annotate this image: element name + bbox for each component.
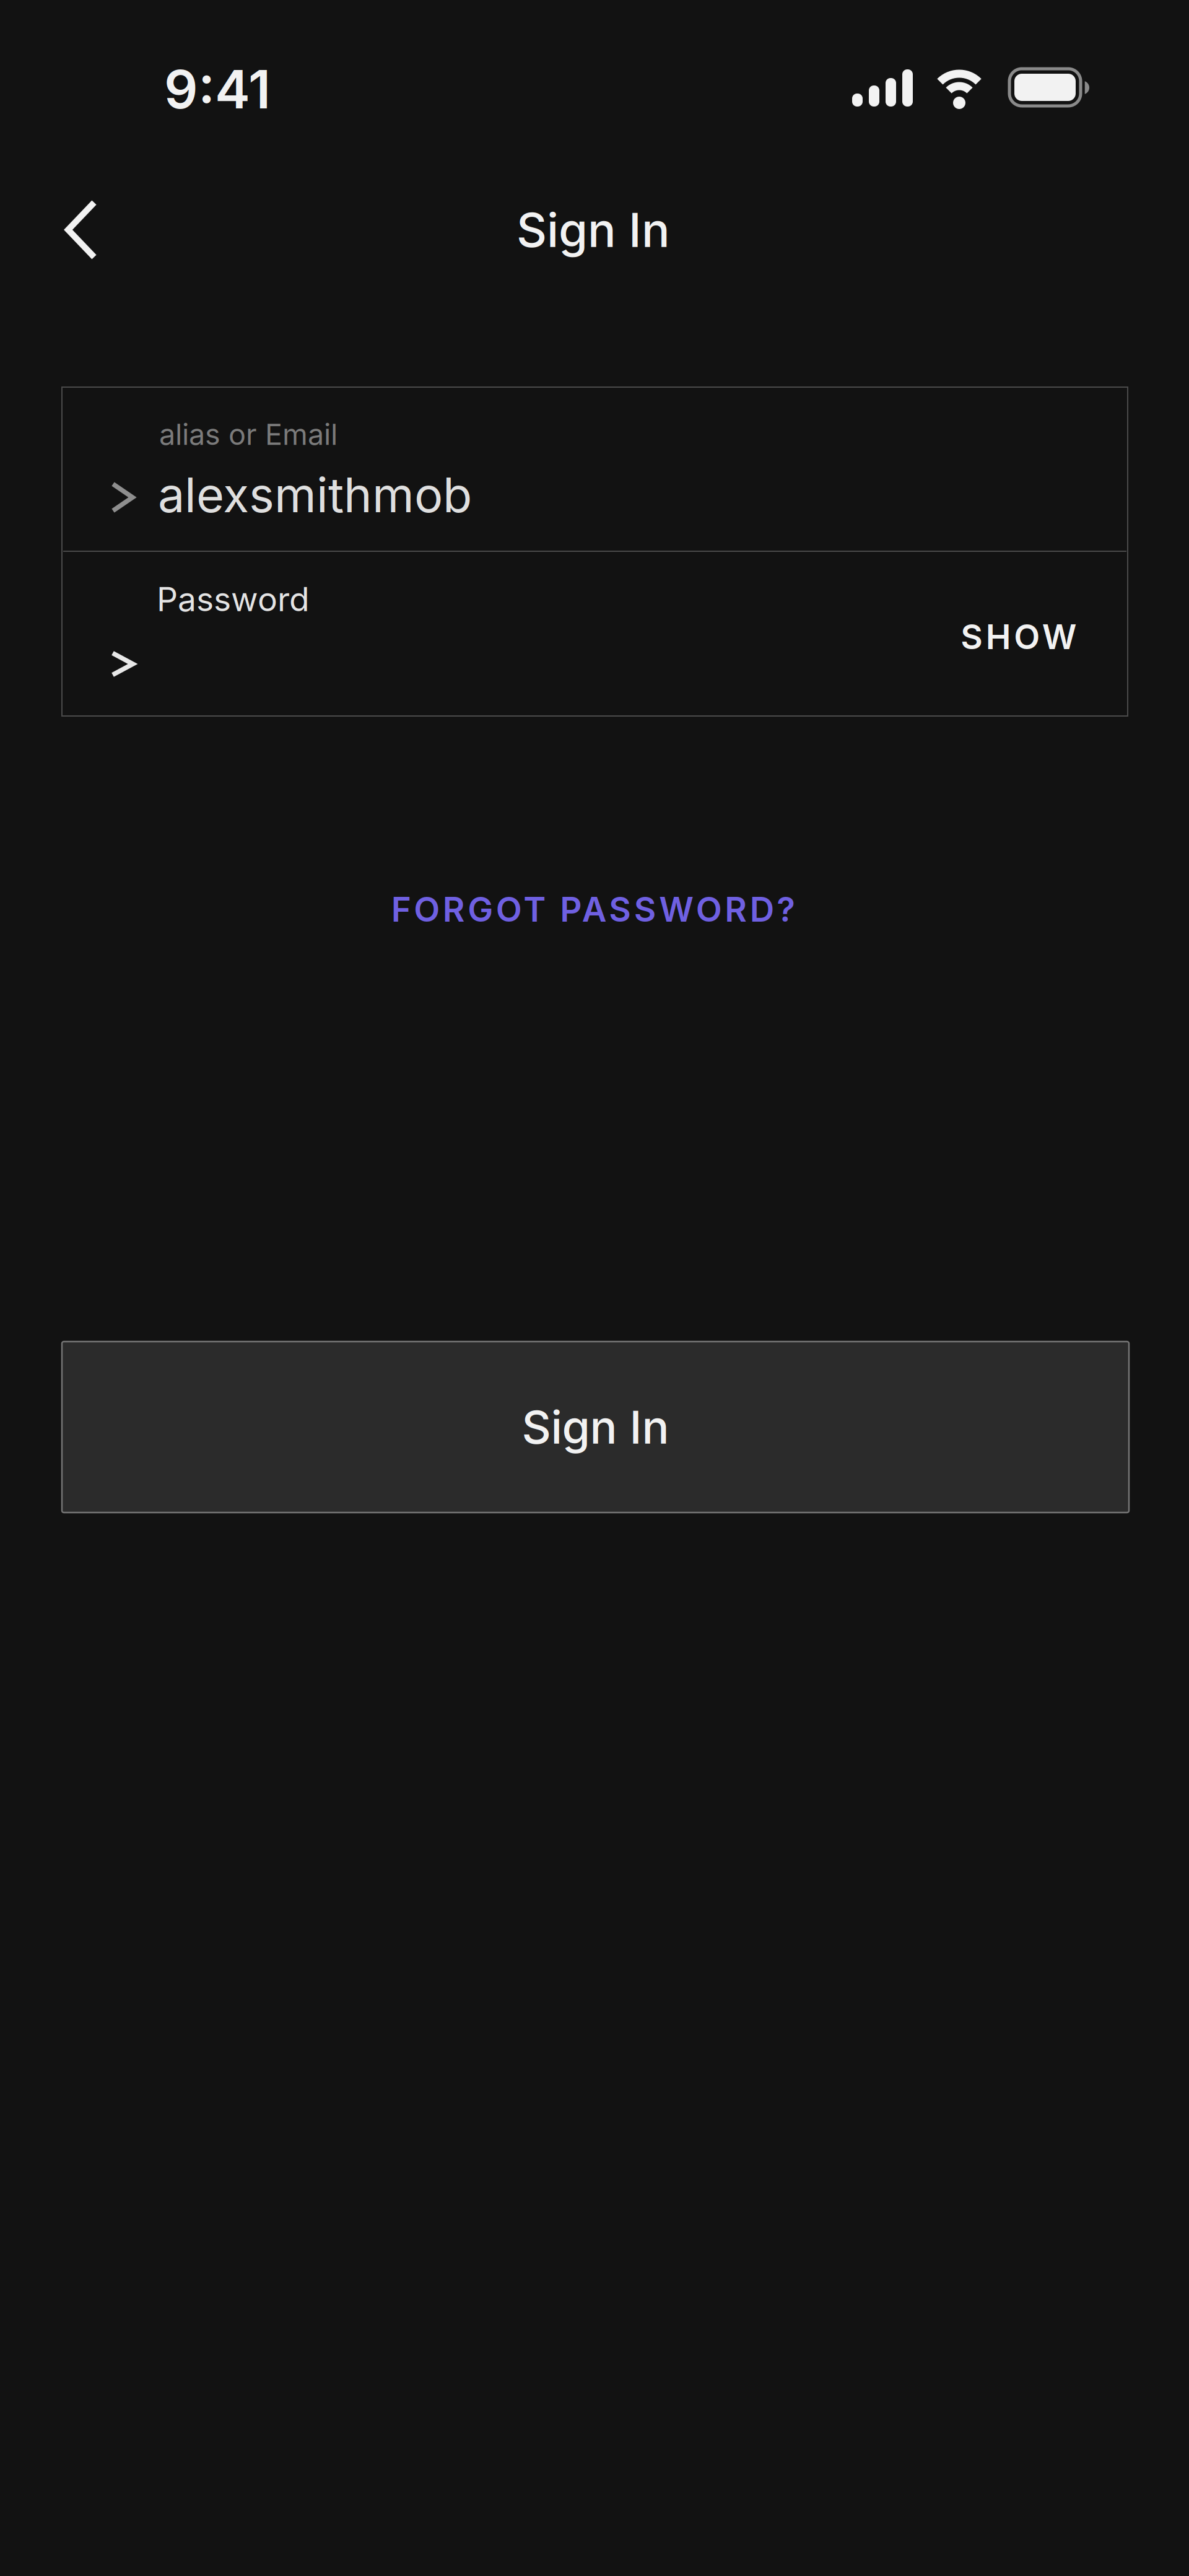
staticText: Password — [157, 579, 310, 619]
staticText: FORGOT PASSWORD? — [391, 889, 795, 930]
button[interactable]: Sign In — [62, 1342, 1129, 1513]
staticText: alias or Email — [159, 417, 338, 452]
button[interactable]: alias or Email — [63, 388, 1126, 551]
button[interactable]: Back — [37, 186, 161, 274]
button[interactable]: Show password — [932, 600, 1105, 674]
staticText: alexsmithmob — [158, 466, 472, 524]
staticText: SHOW — [961, 616, 1077, 657]
staticText: Sign In — [522, 1400, 669, 1454]
button[interactable]: FORGOT PASSWORD? — [315, 872, 872, 946]
staticText: 9:41 — [164, 57, 271, 121]
staticText: Sign In — [516, 201, 670, 258]
button[interactable]: Password — [63, 552, 1126, 715]
